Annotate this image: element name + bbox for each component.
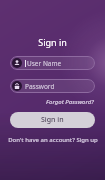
other: Password xyxy=(12,81,22,91)
button[interactable]: Forgot Password? xyxy=(45,97,95,107)
staticText: Forgot Password? xyxy=(46,98,94,106)
staticText: Password xyxy=(25,82,55,91)
staticText: User Name xyxy=(27,59,62,68)
button[interactable]: Password xyxy=(10,79,95,93)
staticText: Sign in xyxy=(38,36,67,48)
button[interactable]: Sign in xyxy=(10,112,95,128)
staticText: Don't have an account? Sign up xyxy=(8,136,98,144)
button[interactable]: Don't have an account? Sign up xyxy=(6,135,100,145)
button[interactable]: User name xyxy=(10,56,95,70)
staticText: Sign in xyxy=(41,115,64,125)
other: User name xyxy=(12,58,22,68)
